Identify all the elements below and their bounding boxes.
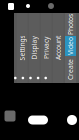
staticText: Photos xyxy=(60,20,79,29)
staticText: Account xyxy=(46,44,70,52)
button[interactable]: Privacy xyxy=(41,13,51,83)
button[interactable]: Profile xyxy=(48,3,54,9)
staticText: Privacy xyxy=(35,44,57,52)
button[interactable]: Display xyxy=(29,13,39,83)
button[interactable]: Create xyxy=(65,56,76,83)
button[interactable]: Photos xyxy=(65,13,76,36)
button[interactable]: Library xyxy=(8,3,14,10)
button[interactable]: Video xyxy=(65,35,76,57)
button[interactable]: Stop xyxy=(4,110,15,121)
staticText: Create xyxy=(60,65,79,74)
button[interactable]: Account xyxy=(53,13,63,83)
button[interactable]: Account xyxy=(67,115,77,125)
staticText: Settings xyxy=(10,44,35,52)
button[interactable]: Settings xyxy=(17,13,27,83)
staticText: Video xyxy=(61,42,79,50)
button[interactable]: Pin xyxy=(26,4,30,8)
staticText: Display xyxy=(23,44,46,52)
button[interactable]: Shutter xyxy=(28,115,48,124)
